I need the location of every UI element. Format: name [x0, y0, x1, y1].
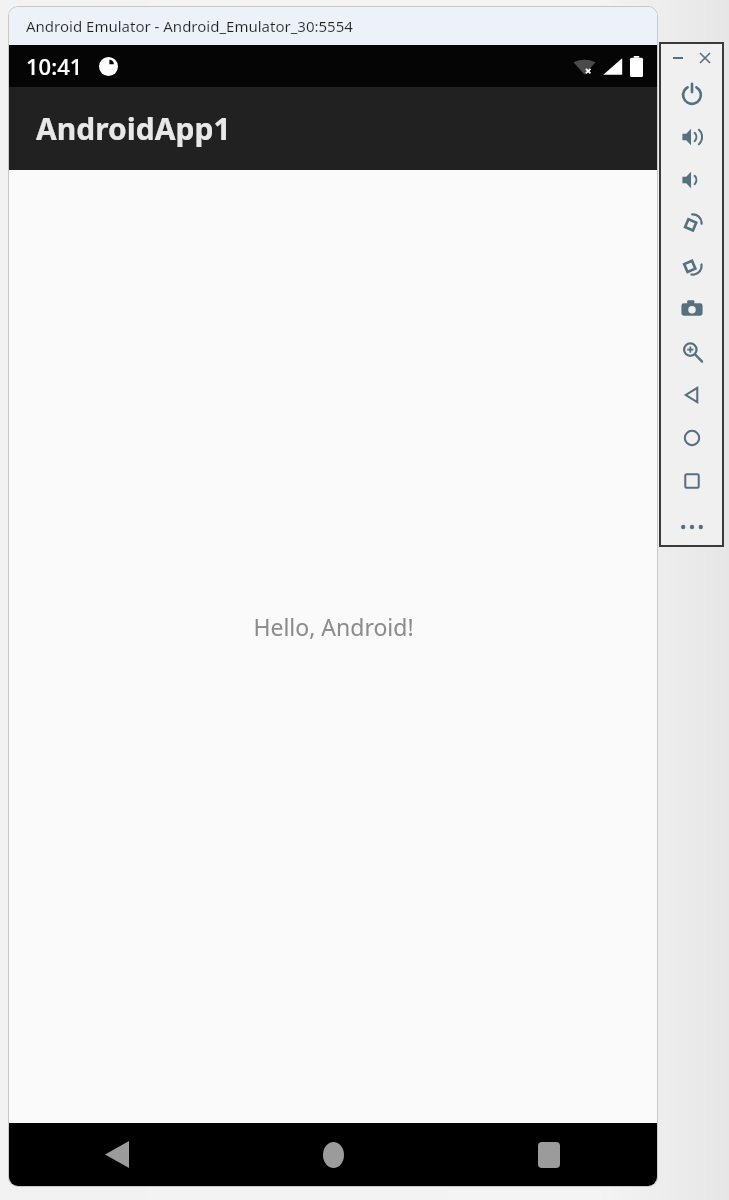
button[interactable]: Volume down [661, 158, 722, 201]
button[interactable]: Take screenshot [661, 287, 722, 330]
staticText: Android Emulator - Android_Emulator_30:5… [26, 16, 353, 36]
button[interactable]: Close [696, 49, 714, 67]
button[interactable]: Home [225, 1123, 441, 1186]
button[interactable]: Rotate left [661, 201, 722, 244]
button[interactable]: Minimize [669, 49, 687, 67]
button[interactable]: Volume up [661, 115, 722, 158]
button[interactable]: Zoom [661, 330, 722, 373]
staticText: AndroidApp1 [36, 108, 231, 149]
button[interactable]: Home [661, 416, 722, 459]
button[interactable]: Rotate right [661, 244, 722, 287]
button[interactable]: Back [9, 1123, 225, 1186]
staticText: Hello, Android! [253, 611, 414, 642]
button[interactable]: Recent apps [441, 1123, 657, 1186]
button[interactable]: Power [661, 72, 722, 115]
button[interactable]: More [661, 509, 722, 545]
staticText: 10:41 [26, 51, 83, 81]
button[interactable]: Recent apps [661, 459, 722, 502]
button[interactable]: Back [661, 373, 722, 416]
